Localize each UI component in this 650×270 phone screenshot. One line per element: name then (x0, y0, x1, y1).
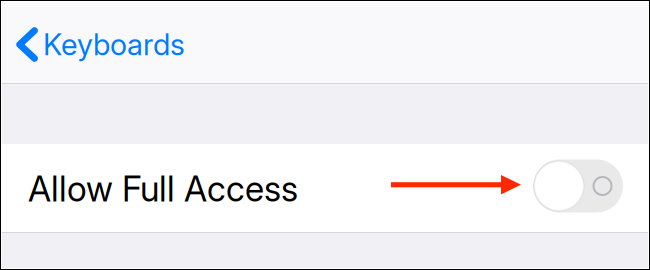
button[interactable]: Keyboards (2, 2, 197, 83)
staticText: Allow Full Access (28, 168, 298, 210)
button[interactable]: Allow Full Access (2, 144, 648, 232)
staticText: Keyboards (43, 27, 185, 62)
